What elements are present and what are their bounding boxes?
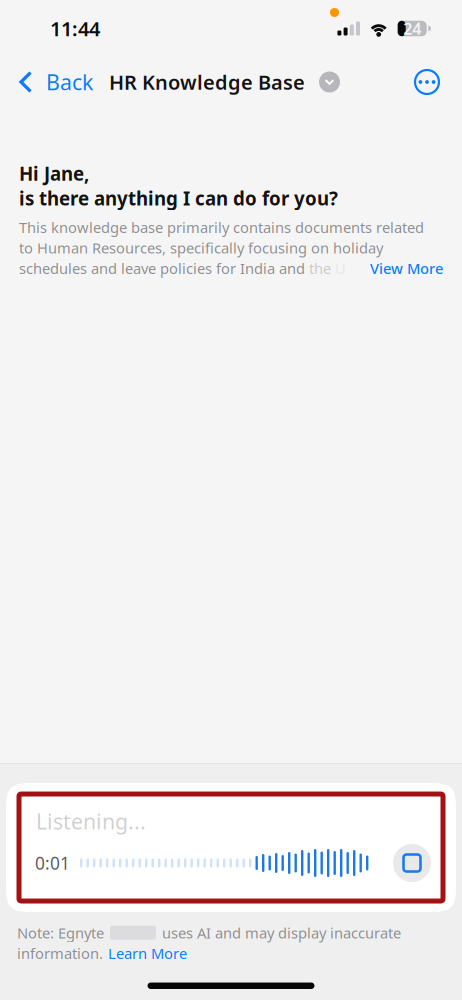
staticText: U — [331, 258, 346, 278]
button[interactable]: More options — [415, 57, 462, 107]
staticText: schedules and leave policies for India a… — [19, 258, 309, 278]
staticText: uses AI and may display inaccurate — [162, 923, 401, 942]
staticText: to Human Resources, specifically focusin… — [19, 238, 383, 258]
staticText: Back — [46, 68, 93, 96]
staticText: is there anything I can do for you? — [19, 186, 338, 211]
staticText: HR Knowledge Base — [109, 69, 305, 95]
staticText: Learn More — [108, 943, 187, 963]
staticText: Note: Egnyte — [17, 923, 104, 942]
button[interactable]: Learn More — [103, 943, 187, 963]
staticText: information. — [17, 943, 103, 963]
staticText: 11:44 — [50, 15, 100, 42]
staticText: View More — [370, 258, 443, 278]
staticText: 24 — [403, 18, 421, 39]
staticText: 0:01 — [35, 851, 70, 874]
button[interactable]: Back — [0, 57, 109, 107]
staticText: Listening... — [36, 807, 146, 835]
button[interactable]: View More — [370, 258, 443, 278]
button[interactable]: HR Knowledge Base — [109, 57, 340, 107]
staticText: This knowledge base primarily contains d… — [19, 218, 424, 237]
staticText: the — [309, 258, 331, 278]
staticText: Hi Jane, — [19, 161, 89, 186]
